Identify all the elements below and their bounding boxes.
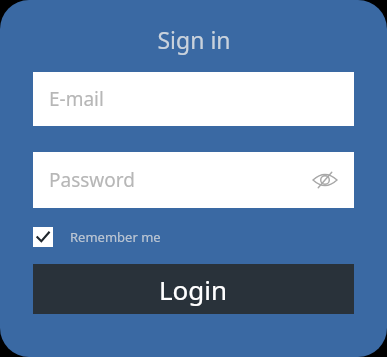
button[interactable]: Login xyxy=(33,264,354,314)
button[interactable]: Show password xyxy=(308,163,342,197)
staticText: Login xyxy=(159,272,228,307)
button[interactable]: Password xyxy=(33,152,354,208)
button[interactable]: E-mail xyxy=(33,72,354,126)
staticText: Password xyxy=(49,167,135,193)
button[interactable]: Remember me xyxy=(33,227,161,247)
staticText: Sign in xyxy=(157,24,231,55)
staticText: E-mail xyxy=(49,86,104,112)
staticText: Remember me xyxy=(70,228,161,246)
